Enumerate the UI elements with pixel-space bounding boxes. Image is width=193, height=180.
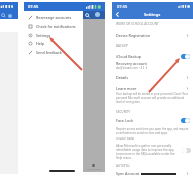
staticText: Check for notifications <box>36 24 76 29</box>
button[interactable]: Details <box>112 72 193 82</box>
button[interactable]: iCloud Backup <box>112 52 193 61</box>
staticText: Details <box>116 75 129 80</box>
staticText: USAGE DATA <box>116 137 135 141</box>
button[interactable]: Sync Account <box>112 169 193 178</box>
button[interactable]: Help <box>24 39 83 48</box>
button[interactable]: Learn more <box>112 83 193 93</box>
staticText: WORK OR SCHOOL ACCOUNT <box>116 22 159 26</box>
button[interactable]: Face Lock <box>112 116 193 125</box>
button[interactable]: Rearrange accounts <box>24 13 83 22</box>
staticText: Help <box>36 41 45 46</box>
staticText: Device Registration <box>116 33 151 38</box>
staticText: Settings <box>144 12 161 18</box>
button[interactable]: Recovery account <box>112 61 193 70</box>
staticText: AUTOFILL <box>116 164 131 168</box>
button[interactable]: Settings <box>24 31 83 40</box>
staticText: Send feedback <box>36 50 62 55</box>
staticText: Allow Microsoft to gather non-personally… <box>116 144 176 160</box>
staticText: 07:55 <box>117 4 128 9</box>
button[interactable]: Account <box>95 12 100 17</box>
staticText: Learn more <box>116 86 137 91</box>
staticText: Settings <box>36 33 51 38</box>
staticText: SECURITY <box>116 110 131 114</box>
staticText: abc@d-exam.com • 4 2 6 <box>116 66 148 70</box>
button[interactable]: Device Registration <box>112 30 193 40</box>
button[interactable]: Check for notifications <box>24 22 83 31</box>
button[interactable]: Send feedback <box>24 48 83 57</box>
staticText: Sync Account <box>116 171 140 176</box>
staticText: Require access each time you open the ap… <box>116 127 190 135</box>
staticText: iCloud Backup <box>116 54 142 59</box>
staticText: Rearrange accounts <box>36 15 72 20</box>
button[interactable]: Back <box>114 11 121 18</box>
button[interactable]: Search <box>83 11 91 19</box>
staticText: 07:55 <box>28 4 39 9</box>
button[interactable]: Usage data toggle <box>182 148 191 153</box>
staticText: Face Lock <box>116 118 134 123</box>
staticText: Your backup will be stored in your perso… <box>116 92 190 104</box>
staticText: Recovery account <box>116 61 147 66</box>
staticText: BACKUP <box>116 44 128 48</box>
